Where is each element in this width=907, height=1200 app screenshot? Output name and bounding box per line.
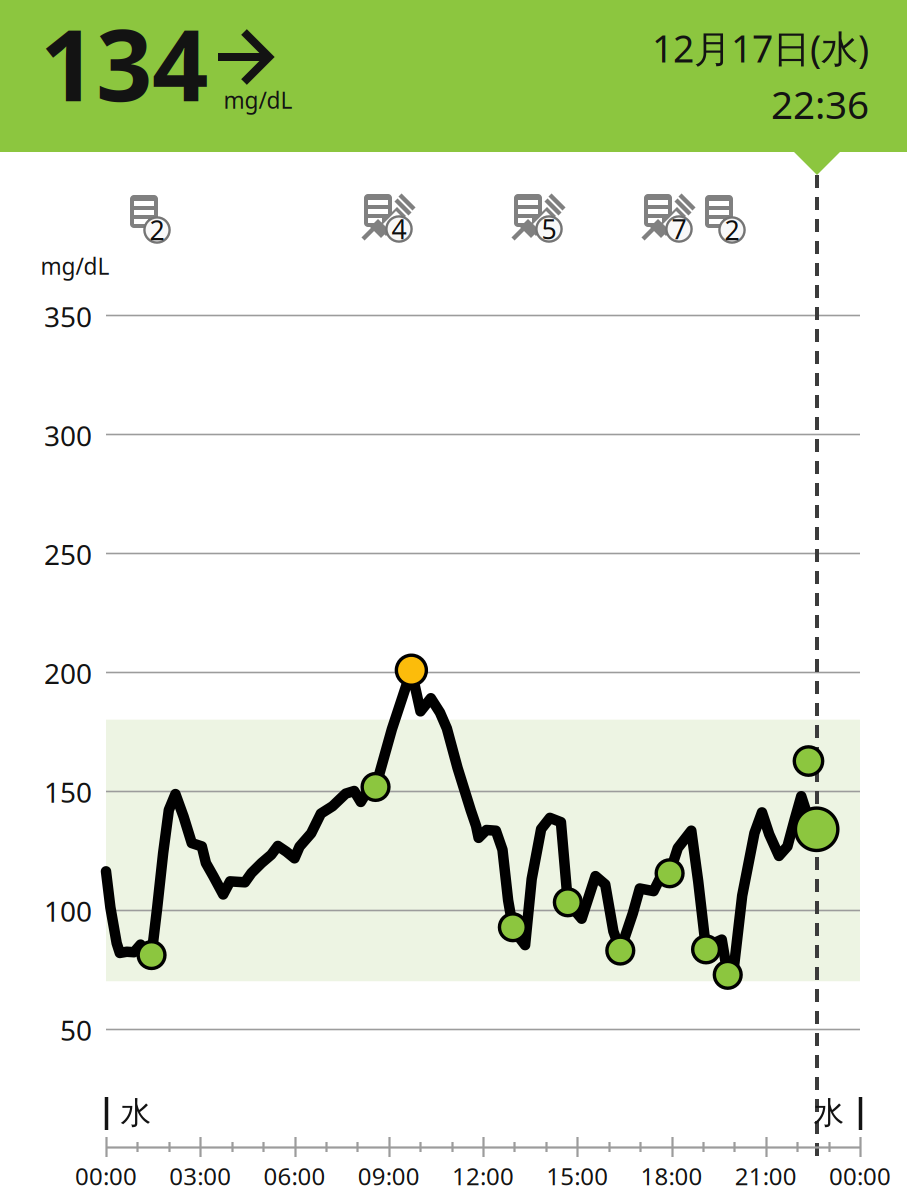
staticText: 22:36 <box>771 78 869 130</box>
button[interactable]: Current glucose 134 mg/dL, steady <box>36 12 308 134</box>
staticText: 水 <box>813 1094 844 1132</box>
staticText: 5 <box>541 211 556 247</box>
staticText: 00:00 <box>829 1160 891 1192</box>
button[interactable]: 4 meal and insulin log entries <box>360 187 420 245</box>
staticText: 134 <box>40 0 208 128</box>
staticText: 4 <box>391 211 406 247</box>
staticText: 200 <box>44 654 92 692</box>
staticText: 00:00 <box>75 1160 137 1192</box>
staticText: 21:00 <box>735 1160 797 1192</box>
button[interactable]: 7 meal and insulin log entries <box>640 187 700 245</box>
staticText: 03:00 <box>169 1160 231 1192</box>
staticText: mg/dL <box>40 251 109 281</box>
button[interactable]: 5 meal and insulin log entries <box>510 187 570 245</box>
staticText: 12:00 <box>452 1160 514 1192</box>
staticText: 15:00 <box>546 1160 608 1192</box>
staticText: 300 <box>44 417 92 454</box>
staticText: 50 <box>60 1011 92 1048</box>
staticText: 18:00 <box>640 1160 702 1192</box>
staticText: 2 <box>149 212 164 248</box>
staticText: 06:00 <box>263 1160 325 1192</box>
staticText: mg/dL <box>223 85 292 115</box>
staticText: 100 <box>44 892 92 929</box>
staticText: 12月17日(水) <box>652 23 869 73</box>
staticText: 09:00 <box>358 1160 420 1192</box>
staticText: 150 <box>44 773 92 811</box>
button[interactable]: 2 meal log entries <box>701 188 761 246</box>
button[interactable]: 2 meal log entries <box>126 188 186 246</box>
staticText: 2 <box>724 212 739 248</box>
staticText: 7 <box>671 211 686 247</box>
staticText: 350 <box>44 298 92 335</box>
staticText: 250 <box>44 536 92 573</box>
staticText: 水 <box>120 1094 151 1132</box>
